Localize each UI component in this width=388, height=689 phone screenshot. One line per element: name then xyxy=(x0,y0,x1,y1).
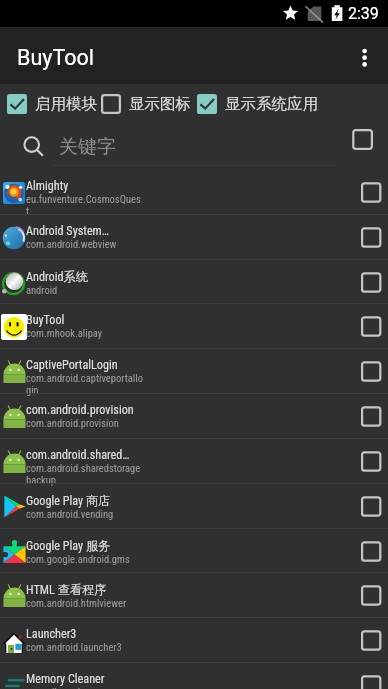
staticText: com.android.launcher3 xyxy=(26,641,122,653)
button[interactable]: Launcher3 xyxy=(0,618,388,663)
staticText: Google Play 服务 xyxy=(26,538,111,553)
button[interactable]: Select com.android.shared… xyxy=(350,439,388,484)
button[interactable]: HTML 查看程序 xyxy=(0,573,388,618)
button[interactable]: 显示图标 xyxy=(97,84,195,124)
button[interactable]: Select CaptivePortalLogin xyxy=(350,349,388,394)
button[interactable]: Select Android System… xyxy=(350,215,388,260)
button[interactable]: More options xyxy=(342,27,388,84)
button[interactable]: Select Android系统 xyxy=(350,260,388,305)
button[interactable]: Search xyxy=(0,124,53,170)
staticText: com.android.provision xyxy=(26,403,134,417)
staticText: 关键字 xyxy=(59,135,116,159)
button[interactable]: Google Play 商店 xyxy=(0,484,388,529)
staticText: 显示图标 xyxy=(129,94,191,114)
button[interactable]: 显示系统应用 xyxy=(193,84,322,124)
staticText: com.android.sharedstoragebackup xyxy=(26,462,143,486)
button[interactable]: Select Launcher3 xyxy=(350,618,388,663)
button[interactable]: Memory Cleaner xyxy=(0,663,388,689)
staticText: BuyTool xyxy=(17,45,94,70)
staticText: 2:39 xyxy=(348,4,379,23)
staticText: CaptivePortalLogin xyxy=(26,358,118,372)
button[interactable]: Android System… xyxy=(0,215,388,260)
button[interactable]: com.android.provision xyxy=(0,394,388,439)
staticText: com.android.provision xyxy=(26,417,119,429)
staticText: Memory Cleaner xyxy=(26,672,105,686)
button[interactable]: Select BuyTool xyxy=(350,304,388,349)
staticText: 启用模块 xyxy=(35,94,97,114)
staticText: com.mhook.alipay xyxy=(26,327,103,339)
button[interactable]: Select HTML 查看程序 xyxy=(350,573,388,618)
staticText: com.android.captiveportallogin xyxy=(26,372,143,396)
button[interactable]: BuyTool xyxy=(0,304,388,349)
button[interactable]: Select Google Play 商店 xyxy=(350,484,388,529)
staticText: 显示系统应用 xyxy=(225,94,318,114)
button[interactable]: Select Almighty xyxy=(350,170,388,215)
staticText: Almighty xyxy=(26,179,69,193)
button[interactable]: Select Google Play 服务 xyxy=(350,529,388,574)
staticText: com.android.webview xyxy=(26,238,117,250)
staticText: BuyTool xyxy=(26,313,65,327)
button[interactable]: 启用模块 xyxy=(3,84,101,124)
button[interactable]: Select all xyxy=(342,124,384,170)
button[interactable]: Select Memory Cleaner xyxy=(350,663,388,689)
staticText: com.android.vending xyxy=(26,508,114,520)
staticText: com.google.android.gms xyxy=(26,553,130,565)
staticText: com.android.shared… xyxy=(26,448,130,462)
button[interactable]: Almighty xyxy=(0,170,388,215)
button[interactable]: CaptivePortalLogin xyxy=(0,349,388,394)
button[interactable]: com.android.shared… xyxy=(0,439,388,484)
staticText: Android System… xyxy=(26,224,109,238)
staticText: Launcher3 xyxy=(26,627,77,641)
staticText: eu.funventure.CosmosQuest xyxy=(26,193,143,217)
staticText: android xyxy=(26,284,58,296)
staticText: Android系统 xyxy=(26,269,88,284)
staticText: Google Play 商店 xyxy=(26,493,111,508)
staticText: com.qihoo.cleaner xyxy=(26,686,104,689)
staticText: HTML 查看程序 xyxy=(26,582,107,597)
button[interactable]: Google Play 服务 xyxy=(0,529,388,574)
button[interactable]: Android系统 xyxy=(0,260,388,305)
staticText: com.android.htmlviewer xyxy=(26,597,127,609)
button[interactable]: Select com.android.provision xyxy=(350,394,388,439)
